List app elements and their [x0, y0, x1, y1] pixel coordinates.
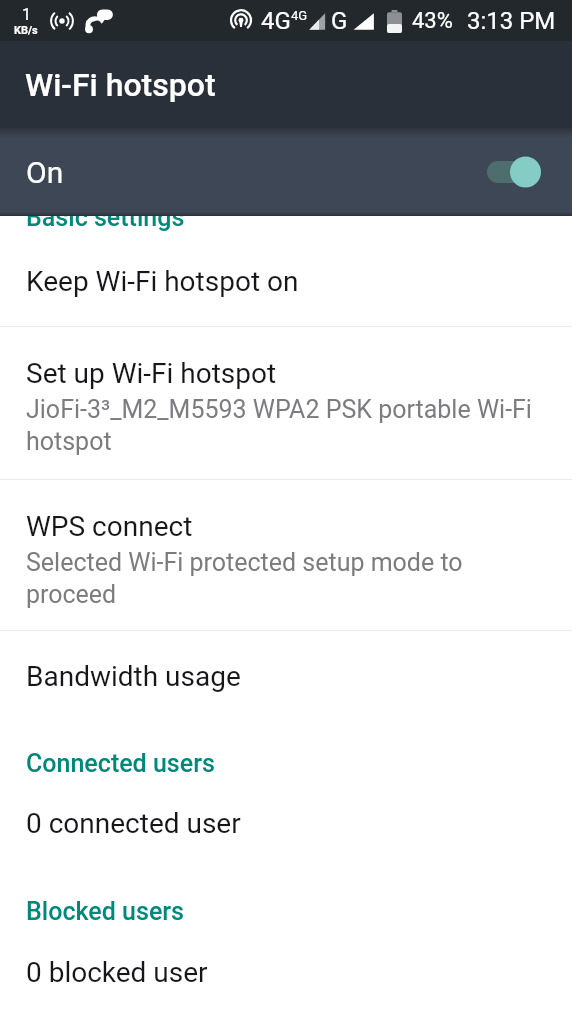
staticText: JioFi-3³_M2_M5593 WPA2 PSK portable Wi-F… [26, 395, 534, 456]
button[interactable]: On [0, 128, 572, 216]
staticText: WPS connect [26, 510, 193, 543]
staticText: On [26, 155, 64, 190]
staticText: 4G [261, 7, 291, 35]
staticText: KB/s [14, 24, 38, 37]
staticText: 43% [412, 8, 453, 34]
staticText: Wi-Fi hotspot [25, 66, 216, 104]
staticText: Connected users [26, 749, 215, 778]
staticText: G [331, 7, 348, 35]
staticText: 0 connected user [26, 807, 241, 840]
staticText: Selected Wi-Fi protected setup mode to p… [26, 548, 534, 609]
button[interactable]: Keep Wi-Fi hotspot on [0, 244, 572, 318]
staticText: Blocked users [26, 897, 185, 926]
staticText: Keep Wi-Fi hotspot on [26, 265, 299, 298]
button[interactable]: Bandwidth usage [0, 639, 572, 713]
staticText: Basic settings [26, 203, 185, 232]
staticText: 0 blocked user [26, 956, 208, 989]
staticText: 3:13 PM [467, 7, 556, 35]
button[interactable]: WPS connect [0, 492, 572, 626]
staticText: 4G [291, 8, 308, 23]
staticText: Bandwidth usage [26, 660, 241, 693]
button[interactable]: 0 connected user [0, 793, 572, 854]
staticText: Set up Wi-Fi hotspot [26, 357, 277, 390]
staticText: 1 [22, 5, 31, 24]
button[interactable]: Set up Wi-Fi hotspot [0, 338, 572, 475]
button[interactable]: 0 blocked user [0, 942, 572, 1003]
